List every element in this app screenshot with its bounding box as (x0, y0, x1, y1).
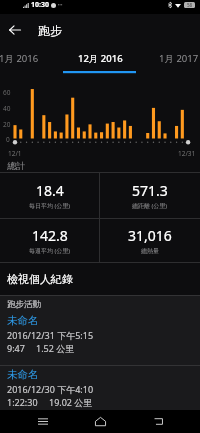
button[interactable]: 未命名 (0, 366, 200, 410)
button[interactable]: 571.3 (100, 173, 200, 218)
staticText: 18.4 (36, 181, 64, 200)
staticText: 10:30 (31, 0, 49, 10)
button[interactable]: 31,016 (100, 219, 200, 262)
staticText: 總熱量 (141, 247, 159, 255)
staticText: 1.52 公里 (36, 342, 75, 354)
staticText: 1月 2016 (0, 52, 39, 65)
button[interactable]: Recent apps (28, 410, 58, 433)
staticText: 0 (6, 135, 10, 144)
staticText: 2016/12/31 下午5:15 (7, 329, 94, 341)
staticText: 1:22:30 (7, 396, 38, 408)
button[interactable]: 檢視個人紀錄 (0, 263, 200, 295)
button[interactable]: 12月 2016 (60, 46, 140, 71)
staticText: 142.8 (32, 226, 68, 245)
staticText: 2016/12/30 下午4:10 (7, 383, 94, 395)
staticText: 1月 2017 (159, 52, 199, 65)
button[interactable]: 1月 2017 (140, 46, 200, 71)
staticText: 9:47 (7, 342, 25, 354)
button[interactable]: Back (143, 410, 173, 433)
staticText: 跑步活動 (7, 299, 41, 310)
staticText: 未命名 (7, 368, 39, 381)
staticText: 12/31 (178, 149, 196, 158)
staticText: 總距離 (公里) (132, 202, 168, 210)
staticText: 40 (3, 104, 11, 113)
staticText: 未命名 (7, 314, 39, 327)
staticText: 58 (187, 2, 193, 8)
staticText: 每日平均 (公里) (29, 202, 71, 210)
button[interactable]: 未命名 (0, 312, 200, 365)
button[interactable]: Home (85, 410, 115, 433)
staticText: 12/1 (8, 149, 22, 158)
staticText: 20 (3, 120, 11, 129)
staticText: 31,016 (128, 226, 172, 245)
staticText: 檢視個人紀錄 (7, 272, 73, 286)
staticText: 19.02 公里 (49, 396, 93, 408)
staticText: 跑步 (38, 23, 62, 38)
staticText: 12月 2016 (78, 52, 123, 65)
button[interactable]: 1月 2016 (0, 46, 58, 71)
staticText: 60 (3, 88, 11, 97)
staticText: 總計 (7, 160, 25, 171)
button[interactable]: 18.4 (0, 173, 99, 218)
staticText: 571.3 (132, 181, 168, 200)
staticText: 每週平均 (公里) (29, 247, 71, 255)
button[interactable]: Back (0, 15, 30, 45)
button[interactable]: 142.8 (0, 219, 99, 262)
